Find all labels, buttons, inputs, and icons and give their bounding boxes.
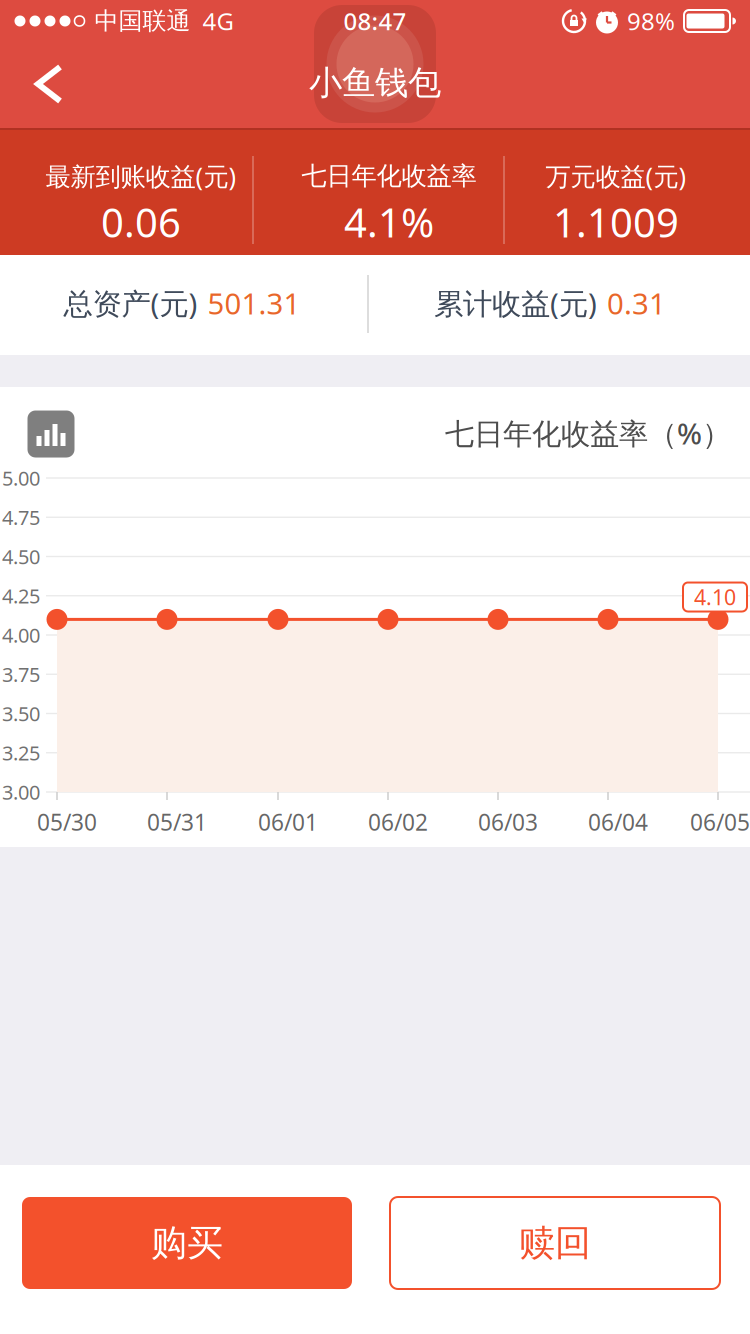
- button[interactable]: Chart type: [27, 410, 74, 457]
- staticText: 3.00: [2, 779, 40, 805]
- staticText: 赎回: [519, 1221, 591, 1265]
- staticText: 中国联通: [94, 6, 190, 36]
- staticText: 4.25: [2, 582, 40, 609]
- staticText: 3.25: [2, 739, 40, 766]
- staticText: 七日年化收益率: [301, 160, 476, 191]
- staticText: 5.00: [2, 465, 40, 491]
- staticText: 06/02: [368, 807, 428, 837]
- staticText: 08:47: [343, 5, 406, 37]
- staticText: 05/31: [147, 807, 207, 837]
- staticText: 0.31: [607, 283, 666, 322]
- button[interactable]: 赎回: [390, 1197, 720, 1289]
- staticText: 05/30: [37, 807, 97, 837]
- staticText: 98%: [627, 5, 675, 37]
- staticText: 4.50: [2, 543, 40, 570]
- button[interactable]: Back: [27, 54, 71, 114]
- staticText: 4.00: [2, 622, 40, 648]
- staticText: 0.06: [101, 195, 181, 248]
- staticText: 501.31: [207, 283, 300, 322]
- staticText: 累计收益(元): [434, 283, 597, 322]
- staticText: 4G: [202, 5, 233, 37]
- staticText: 小鱼钱包: [309, 62, 441, 103]
- staticText: 06/01: [258, 807, 318, 837]
- staticText: 七日年化收益率（%）: [445, 413, 731, 452]
- staticText: 3.50: [2, 700, 40, 727]
- staticText: 万元收益(元): [545, 159, 686, 193]
- staticText: 06/05: [690, 807, 750, 837]
- staticText: 3.75: [2, 661, 40, 688]
- staticText: 4.10: [694, 583, 736, 611]
- button[interactable]: 购买: [22, 1197, 352, 1289]
- staticText: 购买: [151, 1221, 223, 1265]
- staticText: 1.1009: [553, 195, 679, 248]
- staticText: 4.1%: [344, 195, 434, 248]
- staticText: 06/03: [478, 807, 538, 837]
- staticText: 4.75: [2, 504, 40, 531]
- staticText: 最新到账收益(元): [45, 159, 236, 193]
- staticText: 总资产(元): [63, 283, 197, 322]
- staticText: 06/04: [588, 807, 648, 837]
